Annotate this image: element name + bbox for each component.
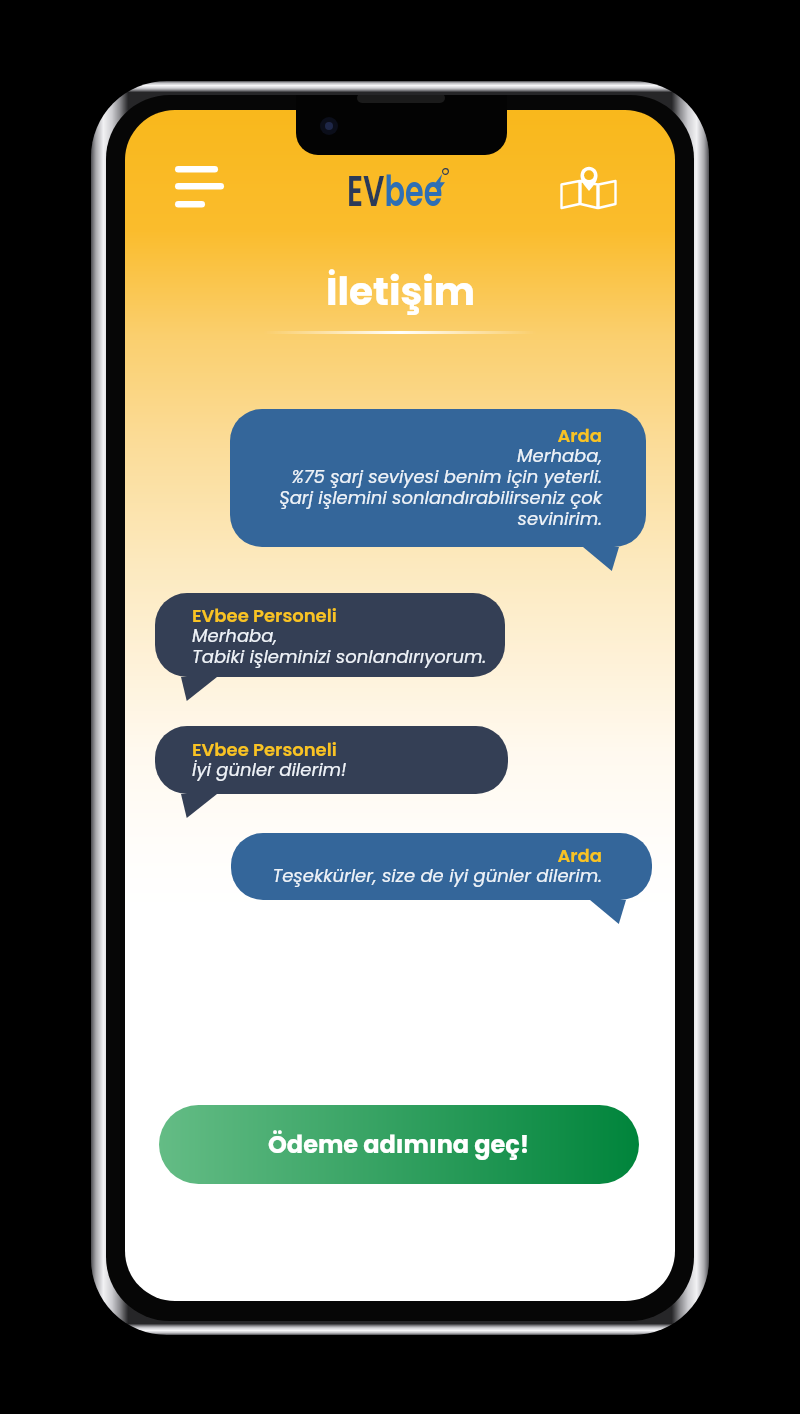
staticText: EVbee	[347, 162, 443, 221]
button[interactable]: Ödeme adımına geç!	[159, 1105, 639, 1184]
button[interactable]: EVbee Personeli Merhaba, Tabiki işlemini…	[155, 593, 505, 677]
button[interactable]: EVbee Personeli İyi günler dilerim!	[155, 726, 508, 794]
button[interactable]: EVbee	[347, 162, 453, 206]
staticText: İletişim	[326, 264, 475, 319]
button[interactable]: Arda Merhaba, %75 şarj seviyesi benim iç…	[230, 409, 646, 547]
button[interactable]: Map	[558, 162, 622, 218]
staticText: Arda Merhaba, %75 şarj seviyesi benim iç…	[246, 423, 602, 532]
staticText: EVbee Personeli İyi günler dilerim!	[192, 737, 488, 783]
staticText: EVbee Personeli Merhaba, Tabiki işlemini…	[192, 603, 485, 670]
button[interactable]: Menu	[168, 159, 230, 215]
button[interactable]: Arda Teşekkürler, size de iyi günler dil…	[231, 833, 652, 900]
staticText: Ödeme adımına geç!	[268, 1128, 530, 1162]
staticText: Arda Teşekkürler, size de iyi günler dil…	[247, 843, 602, 889]
